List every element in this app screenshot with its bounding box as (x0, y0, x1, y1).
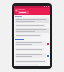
button[interactable]: Search field (18, 11, 29, 14)
button[interactable] (15, 60, 47, 63)
button[interactable] (15, 24, 46, 27)
button[interactable] (15, 48, 44, 51)
button[interactable] (15, 34, 42, 37)
button[interactable] (15, 28, 49, 33)
button[interactable] (15, 18, 49, 23)
button[interactable]: Blue colour swatch (15, 53, 49, 58)
button[interactable]: Pink colour swatch (15, 41, 49, 46)
button[interactable]: Navigate up (15, 9, 18, 12)
